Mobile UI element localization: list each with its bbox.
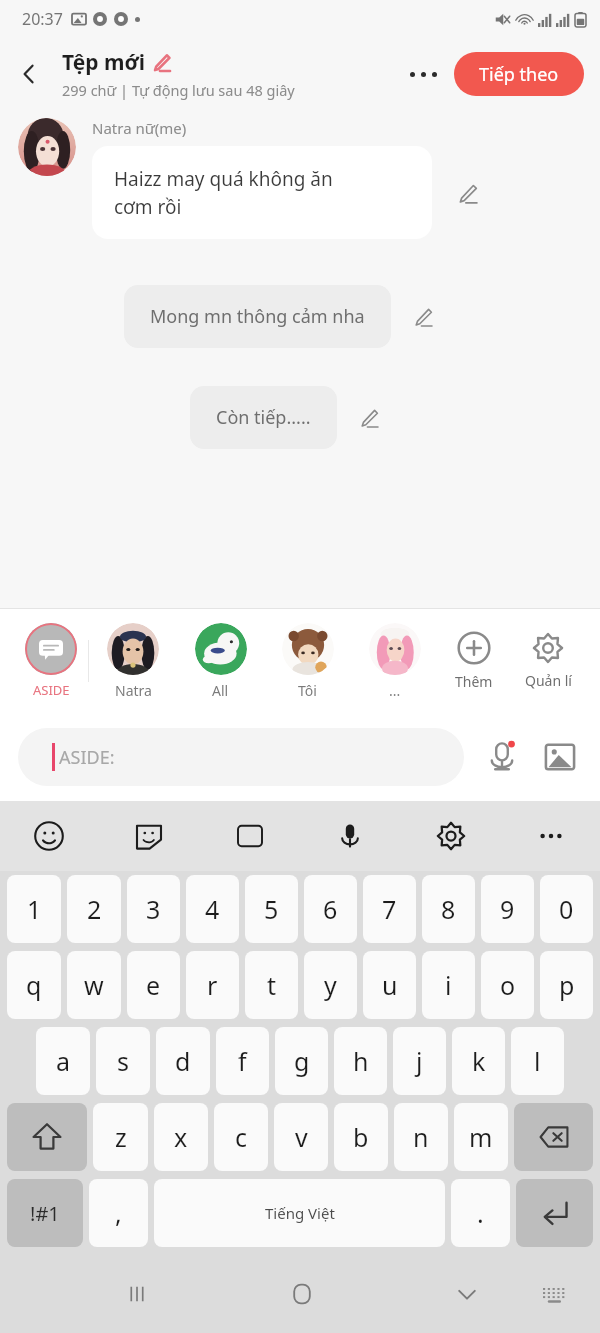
button[interactable]: i <box>422 951 475 1019</box>
button[interactable]: ... <box>351 623 438 700</box>
button[interactable]: j <box>393 1027 446 1095</box>
button[interactable]: More keyboard options <box>528 813 574 859</box>
button[interactable]: t <box>245 951 298 1019</box>
button[interactable]: Recent apps <box>110 1267 164 1321</box>
button[interactable]: Thêm <box>438 631 510 691</box>
button[interactable]: Voice input <box>480 735 524 779</box>
button[interactable]: z <box>93 1103 148 1171</box>
button[interactable]: n <box>394 1103 448 1171</box>
button[interactable]: 9 <box>481 875 534 943</box>
button[interactable]: Natra <box>89 623 177 700</box>
staticText: 4 <box>205 892 220 926</box>
button[interactable]: u <box>363 951 416 1019</box>
staticText: 0 <box>559 892 574 926</box>
staticText: n <box>413 1120 429 1154</box>
button[interactable]: f <box>216 1027 269 1095</box>
staticText: 3 <box>146 892 161 926</box>
staticText: Tiếng Việt <box>265 1203 335 1223</box>
button[interactable]: ASIDE: <box>18 728 464 786</box>
button[interactable]: Voice typing <box>327 813 373 859</box>
button[interactable]: Còn tiếp..... <box>190 386 337 449</box>
button[interactable]: Mong mn thông cảm nha <box>124 285 391 348</box>
button[interactable]: r <box>186 951 239 1019</box>
staticText: l <box>534 1044 541 1078</box>
button[interactable]: e <box>127 951 180 1019</box>
button[interactable]: Edit message <box>450 176 484 210</box>
button[interactable]: g <box>275 1027 328 1095</box>
button[interactable]: Tôi <box>264 623 351 700</box>
staticText: Còn tiếp..... <box>216 405 311 430</box>
button[interactable]: o <box>481 951 534 1019</box>
staticText: 1 <box>27 892 42 926</box>
button[interactable]: y <box>304 951 357 1019</box>
button[interactable]: Backspace <box>514 1103 593 1171</box>
button[interactable]: 7 <box>363 875 416 943</box>
staticText: d <box>175 1044 191 1078</box>
staticText: ASIDE <box>33 681 70 699</box>
button[interactable]: Edit message <box>407 301 439 333</box>
staticText: m <box>469 1120 493 1154</box>
button[interactable]: Home <box>275 1267 329 1321</box>
button[interactable]: Quản lí <box>510 632 586 690</box>
button[interactable]: 0 <box>540 875 593 943</box>
staticText: b <box>353 1120 369 1154</box>
button[interactable]: Haizz may quá không ăn cơm rồi <box>92 146 432 239</box>
button[interactable]: q <box>7 951 61 1019</box>
button[interactable]: 2 <box>67 875 121 943</box>
button[interactable]: All <box>177 623 264 700</box>
button[interactable]: . <box>451 1179 510 1247</box>
staticText: Natra <box>115 681 152 700</box>
button[interactable]: 3 <box>127 875 180 943</box>
button[interactable]: m <box>454 1103 508 1171</box>
button[interactable]: p <box>540 951 593 1019</box>
button[interactable]: w <box>67 951 121 1019</box>
button[interactable]: k <box>452 1027 505 1095</box>
button[interactable]: h <box>334 1027 387 1095</box>
staticText: Quản lí <box>525 671 572 690</box>
button[interactable]: 1 <box>7 875 61 943</box>
button[interactable]: s <box>96 1027 150 1095</box>
staticText: 9 <box>500 892 515 926</box>
button[interactable]: l <box>511 1027 564 1095</box>
button[interactable]: Keyboard settings <box>428 813 474 859</box>
button[interactable]: Back <box>8 53 50 95</box>
button[interactable]: Enter <box>516 1179 593 1247</box>
staticText: 7 <box>382 892 397 926</box>
staticText: o <box>500 968 516 1002</box>
staticText: u <box>382 968 398 1002</box>
button[interactable]: 4 <box>186 875 239 943</box>
button[interactable]: Sticker <box>126 813 172 859</box>
staticText: Mong mn thông cảm nha <box>150 304 365 329</box>
button[interactable]: Emoji <box>26 813 72 859</box>
button[interactable]: b <box>334 1103 388 1171</box>
staticText: Tệp mới <box>62 48 145 77</box>
staticText: 6 <box>323 892 338 926</box>
button[interactable]: !#1 <box>7 1179 83 1247</box>
staticText: g <box>294 1044 310 1078</box>
button[interactable]: Edit message <box>353 402 385 434</box>
staticText: r <box>207 968 218 1002</box>
button[interactable]: ASIDE <box>14 623 88 699</box>
button[interactable]: More options <box>400 51 446 97</box>
button[interactable]: Attach image <box>538 735 582 779</box>
staticText: x <box>174 1120 188 1154</box>
button[interactable]: , <box>89 1179 148 1247</box>
button[interactable]: Avatar Natra nữ <box>18 118 76 176</box>
button[interactable]: GIF <box>227 813 273 859</box>
staticText: . <box>477 1196 484 1230</box>
button[interactable]: 6 <box>304 875 357 943</box>
button[interactable]: Change keyboard <box>530 1269 580 1319</box>
button[interactable]: c <box>214 1103 268 1171</box>
button[interactable]: d <box>156 1027 210 1095</box>
staticText: y <box>324 968 337 1002</box>
button[interactable]: Hide keyboard <box>440 1267 494 1321</box>
button[interactable]: a <box>36 1027 90 1095</box>
button[interactable]: v <box>274 1103 328 1171</box>
button[interactable]: 8 <box>422 875 475 943</box>
staticText: !#1 <box>30 1200 60 1227</box>
button[interactable]: x <box>154 1103 208 1171</box>
button[interactable]: 5 <box>245 875 298 943</box>
button[interactable]: Shift <box>7 1103 87 1171</box>
button[interactable]: Tiếp theo <box>454 52 584 96</box>
button[interactable]: Tiếng Việt <box>154 1179 445 1247</box>
